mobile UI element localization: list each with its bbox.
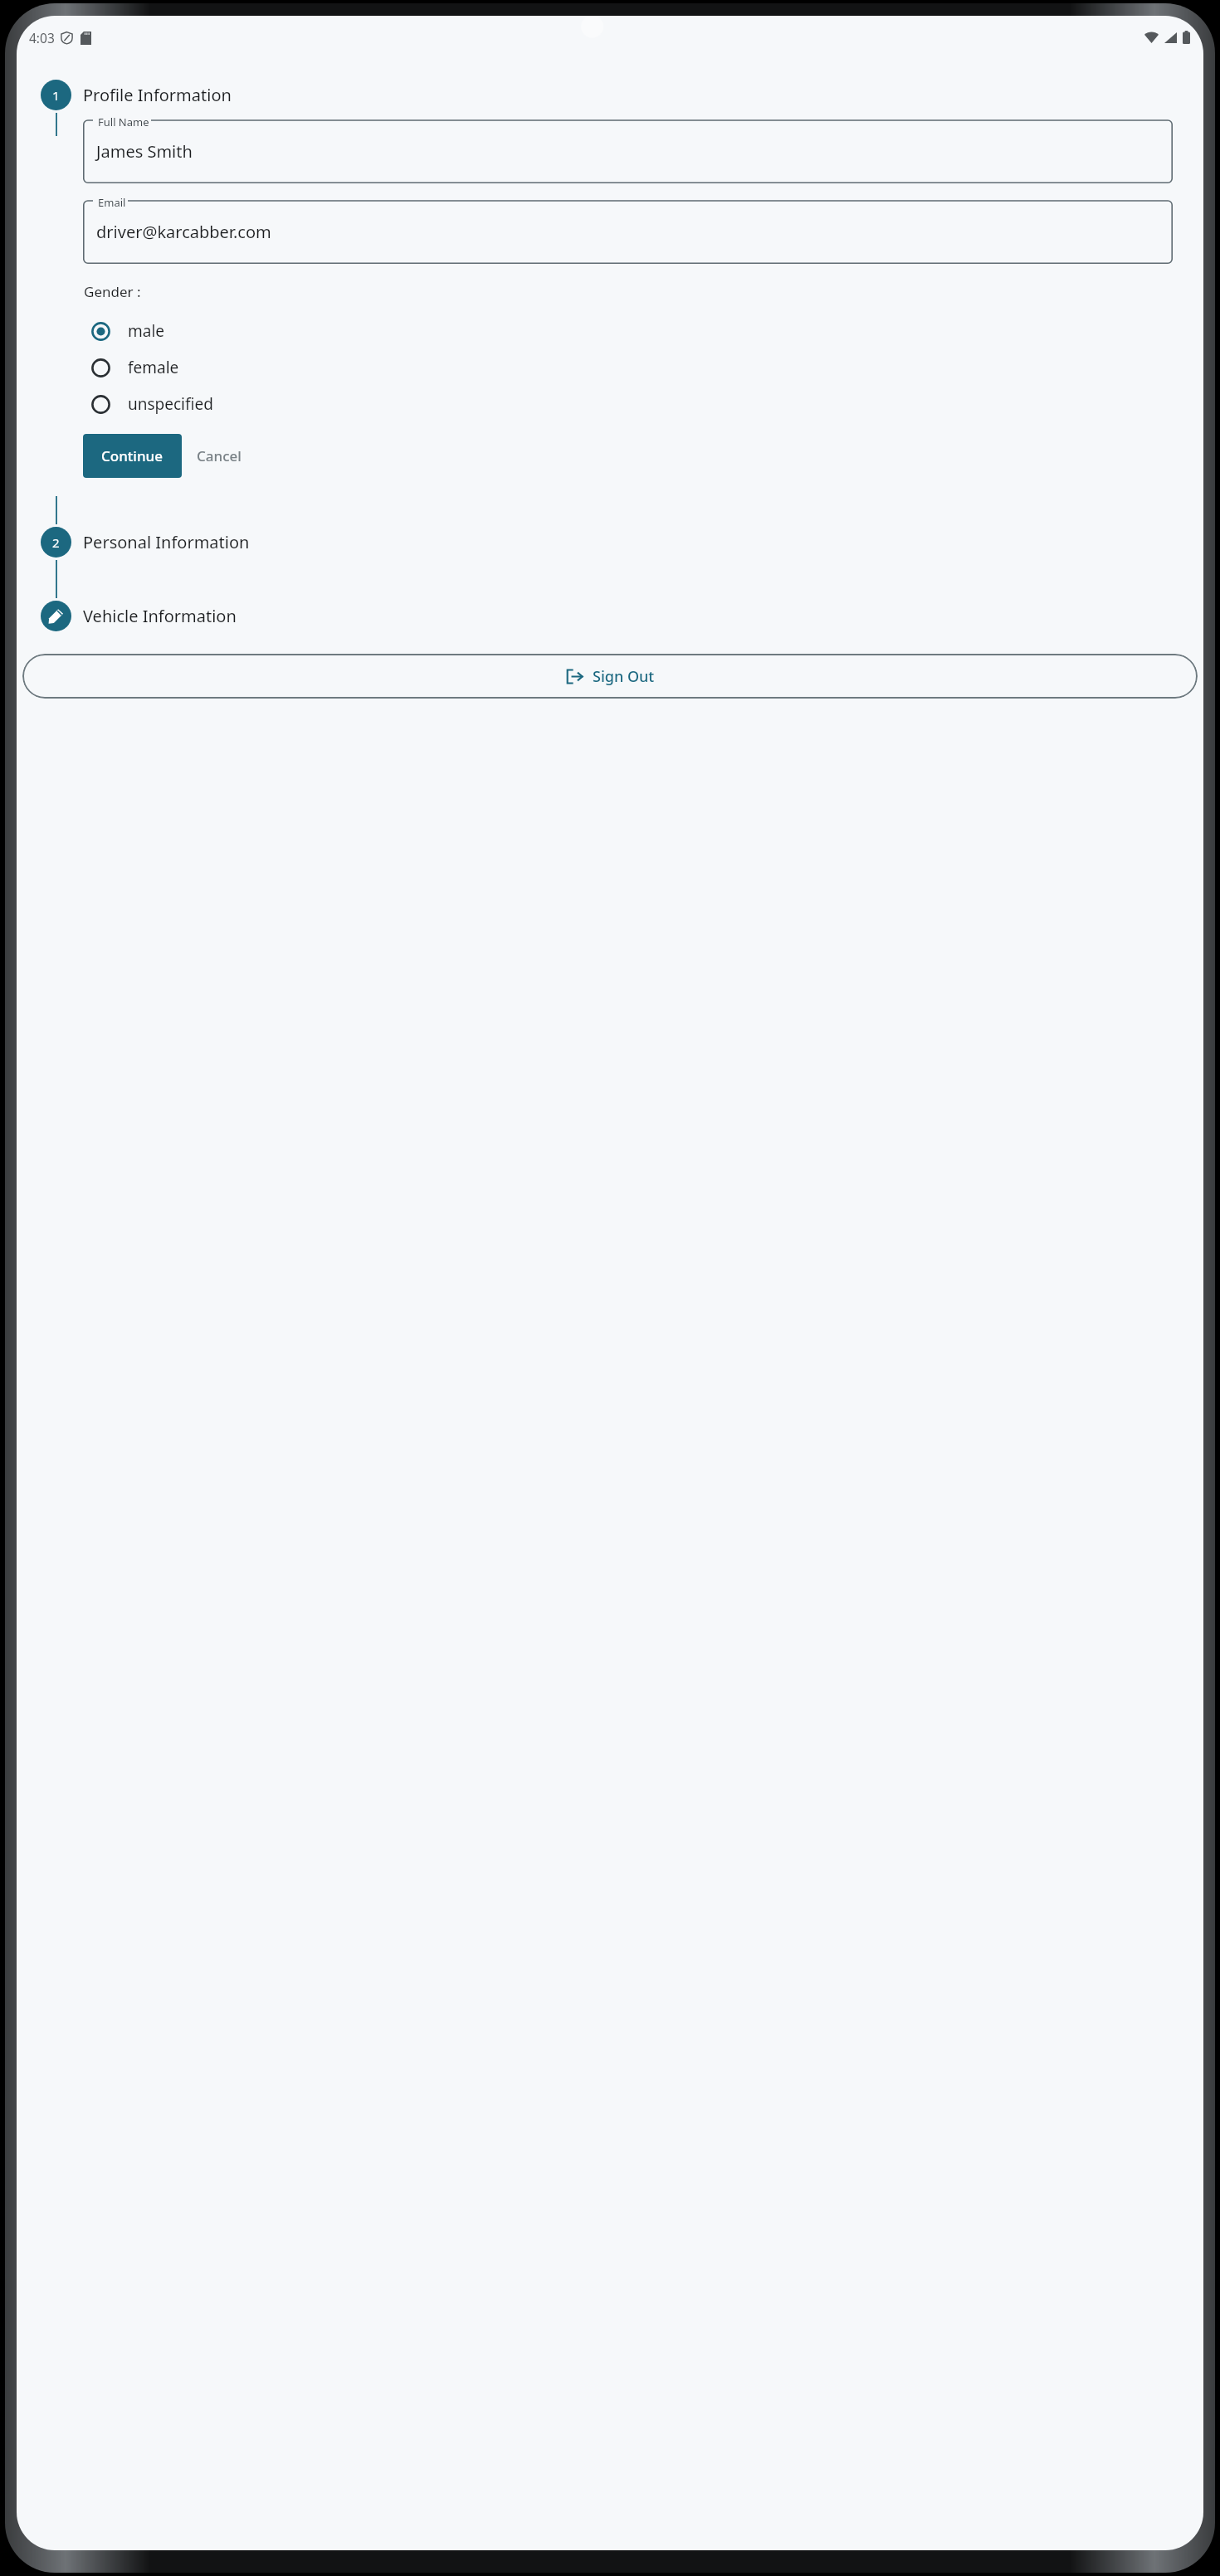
staticText: Vehicle Information (83, 605, 237, 627)
button[interactable]: Cancel (182, 434, 256, 478)
button[interactable]: Full Name (83, 114, 1173, 183)
staticText: male (128, 320, 165, 342)
staticText: Gender : (84, 282, 141, 301)
button[interactable]: 2 (17, 524, 1203, 560)
staticText: female (128, 357, 179, 378)
staticText: Full Name (98, 114, 149, 129)
staticText: Personal Information (83, 531, 250, 553)
button[interactable]: Email (83, 195, 1173, 264)
button[interactable]: female (83, 349, 1203, 386)
staticText: 4:03 (29, 29, 55, 46)
staticText: James Smith (96, 140, 193, 163)
staticText: Cancel (197, 446, 242, 465)
staticText: driver@karcabber.com (96, 221, 271, 243)
staticText: Sign Out (593, 666, 655, 687)
staticText: Email (98, 195, 126, 210)
staticText: unspecified (128, 393, 213, 415)
button[interactable]: Continue (83, 434, 182, 478)
button[interactable]: Sign Out (22, 654, 1198, 699)
button[interactable]: male (83, 313, 1203, 349)
button[interactable]: Vehicle Information (17, 598, 1203, 634)
staticText: 2 (52, 534, 60, 551)
staticText: Profile Information (83, 84, 232, 106)
button[interactable]: unspecified (83, 386, 1203, 422)
button[interactable]: 1 (17, 77, 1203, 113)
staticText: Continue (101, 446, 163, 465)
staticText: 1 (52, 87, 60, 104)
